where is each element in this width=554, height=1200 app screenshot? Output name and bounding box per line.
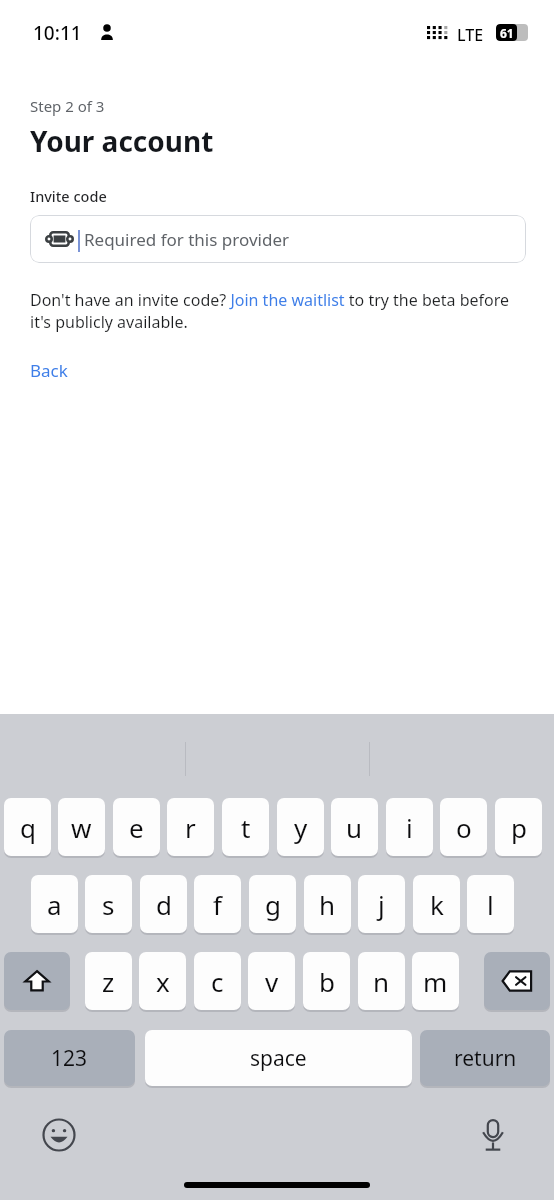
button[interactable]: u [331,798,378,856]
button[interactable]: p [495,798,542,856]
staticText: a [47,887,62,922]
button[interactable]: f [194,875,241,933]
staticText: return [454,1044,517,1073]
button[interactable]: v [248,952,295,1010]
staticText: q [20,810,36,845]
button[interactable]: o [440,798,487,856]
button[interactable] [4,952,70,1010]
staticText: l [487,887,494,922]
button[interactable]: s [85,875,132,933]
staticText: t [241,810,251,845]
staticText: w [71,810,92,845]
button[interactable]: Voice input [472,1114,514,1156]
button[interactable]: 123 [4,1030,135,1086]
staticText: Invite code [30,186,107,206]
staticText: o [456,810,472,845]
staticText: 61 [500,25,514,41]
button[interactable]: space [145,1030,412,1086]
staticText: Required for this provider [84,228,289,251]
staticText: h [319,887,336,922]
button[interactable]: j [358,875,405,933]
staticText: u [346,810,363,845]
staticText: g [265,887,281,922]
staticText: LTE [457,24,484,46]
staticText: Your account [30,122,214,160]
staticText: z [102,964,115,999]
staticText: Back [30,359,68,382]
staticText: d [156,887,172,922]
staticText: e [129,810,144,845]
staticText: x [156,964,170,999]
staticText: 123 [51,1044,88,1073]
button[interactable]: n [358,952,405,1010]
button[interactable]: w [58,798,105,856]
button[interactable]: k [413,875,460,933]
button[interactable]: c [194,952,241,1010]
button[interactable]: Emoji keyboard [38,1114,80,1156]
button[interactable]: e [113,798,160,856]
staticText: y [294,810,308,845]
button[interactable]: i [386,798,433,856]
button[interactable]: t [222,798,269,856]
button[interactable]: d [140,875,187,933]
button[interactable]: r [167,798,214,856]
staticText: s [102,887,115,922]
staticText: Don't have an invite code? Join the wait… [30,289,526,333]
button[interactable]: Back [30,359,68,382]
button[interactable]: y [277,798,324,856]
staticText: c [211,964,224,999]
button[interactable]: a [31,875,78,933]
staticText: f [213,887,222,922]
staticText: j [378,887,385,922]
staticText: k [430,887,444,922]
staticText: v [265,964,279,999]
button[interactable]: g [249,875,296,933]
button[interactable]: z [85,952,132,1010]
button[interactable]: Required for this provider [30,215,526,263]
staticText: n [373,964,390,999]
staticText: b [319,964,335,999]
button[interactable]: h [304,875,351,933]
button[interactable]: m [412,952,459,1010]
button[interactable]: return [420,1030,550,1086]
staticText: p [511,810,527,845]
button[interactable]: q [4,798,51,856]
staticText: r [185,810,196,845]
staticText: m [423,964,448,999]
button[interactable]: l [467,875,514,933]
staticText: space [250,1044,307,1073]
button[interactable] [484,952,550,1010]
staticText: i [406,810,413,845]
staticText: Step 2 of 3 [30,96,105,116]
button[interactable]: b [303,952,350,1010]
staticText: 10:11 [33,20,82,46]
button[interactable]: x [139,952,186,1010]
